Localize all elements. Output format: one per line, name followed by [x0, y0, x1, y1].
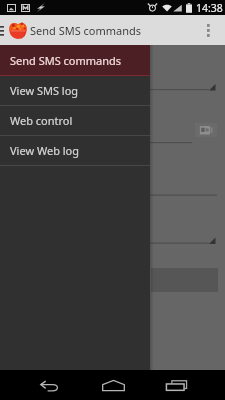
button[interactable]: View Web log	[0, 136, 150, 165]
button[interactable]: Send SMS commands	[0, 45, 150, 75]
staticText: View Web log	[10, 143, 80, 158]
button[interactable]: View SMS log	[0, 76, 150, 105]
button[interactable]: More options	[197, 15, 219, 45]
staticText: Send SMS commands	[30, 23, 142, 38]
staticText: 14:38	[196, 1, 223, 15]
button[interactable]: Recent apps	[158, 370, 194, 400]
button[interactable]: Pick contact	[195, 123, 217, 137]
button[interactable]: Back	[31, 370, 67, 400]
button[interactable]: Open navigation drawer	[0, 15, 4, 45]
staticText: View SMS log	[10, 83, 79, 98]
button[interactable]: Home	[95, 370, 132, 400]
button[interactable]: Web control	[0, 106, 150, 135]
staticText: Web control	[10, 113, 73, 128]
staticText: Send SMS commands	[10, 53, 122, 68]
